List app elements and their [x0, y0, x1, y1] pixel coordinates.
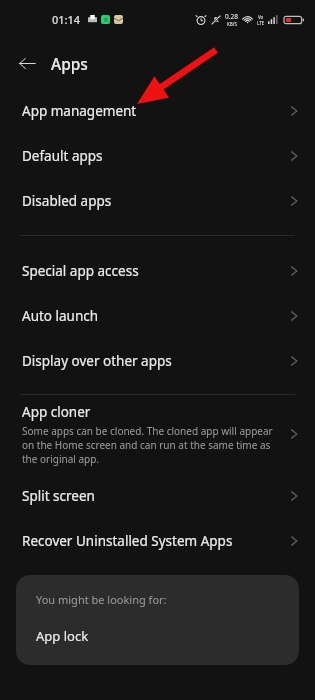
- staticText: 01:14: [52, 12, 81, 27]
- staticText: LTE: [257, 20, 265, 26]
- staticText: Apps: [51, 53, 88, 74]
- staticText: App management: [22, 102, 137, 120]
- button[interactable]: Display over other apps: [0, 338, 315, 383]
- button[interactable]: Default apps: [0, 133, 315, 178]
- staticText: Some apps can be cloned. The cloned app …: [22, 424, 273, 466]
- staticText: Vo: [258, 14, 264, 20]
- staticText: KB/S: [227, 21, 237, 27]
- button[interactable]: App cloner: [0, 395, 315, 473]
- staticText: Recover Uninstalled System Apps: [22, 532, 233, 550]
- button[interactable]: Split screen: [0, 473, 315, 518]
- button[interactable]: Back: [13, 49, 41, 77]
- staticText: App cloner: [22, 403, 91, 421]
- staticText: Auto launch: [22, 307, 99, 325]
- staticText: App lock: [36, 627, 89, 645]
- button[interactable]: Disabled apps: [0, 178, 315, 223]
- staticText: Default apps: [22, 147, 103, 165]
- staticText: B: [104, 16, 108, 24]
- staticText: Disabled apps: [22, 192, 112, 210]
- staticText: Special app access: [22, 262, 139, 280]
- staticText: Display over other apps: [22, 352, 172, 370]
- button[interactable]: Recover Uninstalled System Apps: [0, 518, 315, 563]
- staticText: Split screen: [22, 487, 95, 505]
- button[interactable]: Special app access: [0, 248, 315, 293]
- button[interactable]: App lock: [16, 619, 299, 653]
- button[interactable]: Auto launch: [0, 293, 315, 338]
- button[interactable]: App management: [0, 88, 315, 133]
- staticText: You might be looking for:: [36, 592, 167, 607]
- staticText: 0.28: [225, 12, 238, 21]
